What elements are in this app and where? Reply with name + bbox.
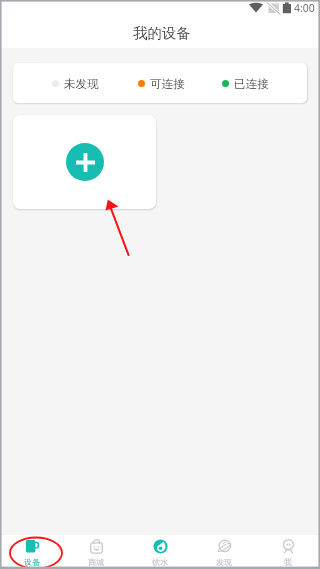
staticText: 已连接 [234, 77, 269, 92]
staticText: 我 [284, 557, 292, 567]
staticText: 商城 [88, 557, 104, 567]
button[interactable]: 商城 [64, 535, 128, 569]
staticText: 饮水 [152, 557, 168, 567]
staticText: 未发现 [64, 77, 99, 92]
button[interactable]: 饮水 [128, 535, 192, 569]
button[interactable]: Add device [13, 115, 156, 209]
button[interactable]: 设备 [0, 535, 64, 569]
staticText: 可连接 [150, 77, 185, 92]
button[interactable]: 发现 [192, 535, 256, 569]
staticText: 发现 [216, 557, 232, 567]
other: Add device [66, 143, 104, 181]
staticText: 4:00 [294, 1, 315, 15]
staticText: 我的设备 [133, 24, 191, 42]
button[interactable]: 我 [256, 535, 320, 569]
staticText: 设备 [24, 557, 40, 567]
